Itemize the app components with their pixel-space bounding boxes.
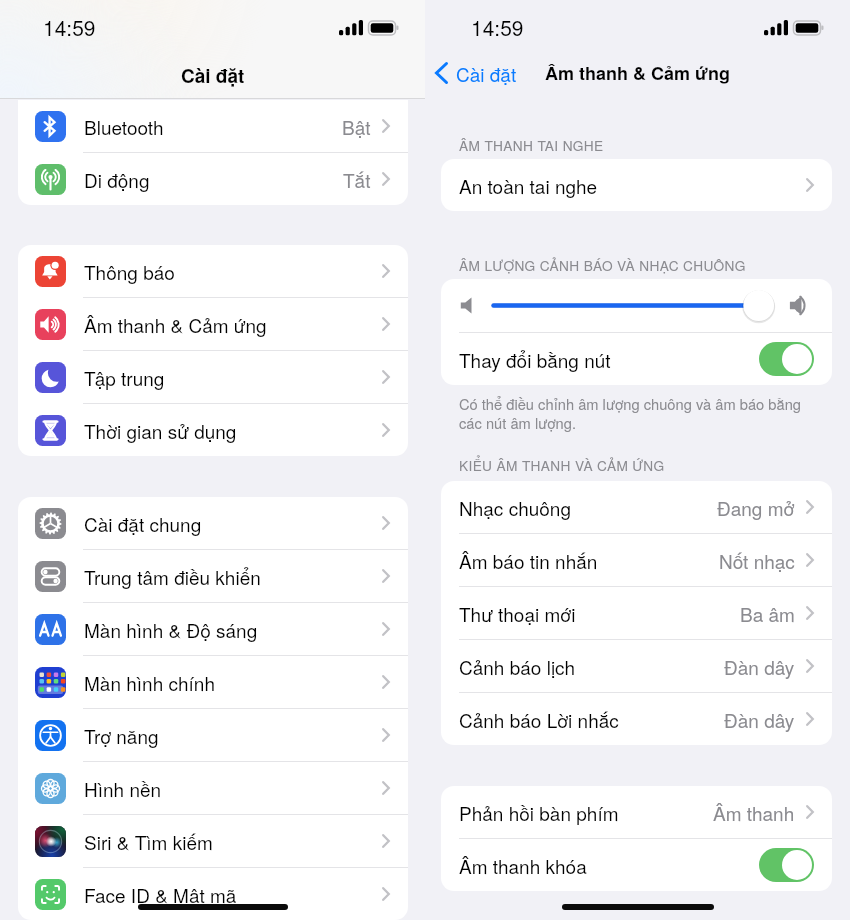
staticText: ÂM LƯỢNG CẢNH BÁO VÀ NHẠC CHUÔNG [459, 255, 746, 275]
button[interactable]: Màn hình chính [18, 656, 408, 708]
staticText: Tập trung [84, 364, 165, 391]
other: Toggle on [759, 848, 814, 882]
staticText: Đàn dây [724, 706, 795, 733]
staticText: Cài đặt [181, 62, 245, 89]
button[interactable]: Tập trung [18, 351, 408, 403]
staticText: Trợ năng [84, 722, 159, 749]
button[interactable]: Thời gian sử dụng [18, 404, 408, 456]
button[interactable]: Trợ năng [18, 709, 408, 761]
staticText: Di động [84, 166, 150, 193]
button[interactable]: Cảnh báo Lời nhắc [441, 693, 832, 745]
staticText: Siri & Tìm kiếm [84, 828, 213, 855]
staticText: Có thể điều chỉnh âm lượng chuông và âm … [459, 393, 801, 433]
button[interactable]: Nhạc chuông [441, 481, 832, 533]
staticText: Bật [342, 113, 371, 140]
button[interactable]: Thay đổi bằng nút [441, 333, 832, 385]
staticText: Cài đặt chung [84, 510, 202, 537]
staticText: KIỂU ÂM THANH VÀ CẢM ỨNG [459, 455, 665, 475]
staticText: Thay đổi bằng nút [459, 346, 611, 373]
staticText: Cài đặt [456, 60, 517, 87]
button[interactable]: Thông báo [18, 245, 408, 297]
staticText: Ba âm [740, 600, 795, 627]
staticText: Trung tâm điều khiển [84, 563, 261, 590]
staticText: Phản hồi bàn phím [459, 799, 619, 826]
staticText: Hình nền [84, 775, 162, 802]
staticText: Thông báo [84, 258, 175, 285]
button[interactable]: Hình nền [18, 762, 408, 814]
staticText: Âm thanh [713, 799, 795, 826]
staticText: Đang mở [717, 494, 795, 521]
staticText: Face ID & Mật mã [84, 881, 237, 908]
button[interactable]: An toàn tai nghe [441, 159, 832, 211]
staticText: Âm thanh & Cảm ứng [545, 60, 730, 86]
button[interactable]: Âm báo tin nhắn [441, 534, 832, 586]
button[interactable]: Thư thoại mới [441, 587, 832, 639]
button[interactable]: Cảnh báo lịch [441, 640, 832, 692]
other: Back [435, 62, 448, 84]
staticText: Nhạc chuông [459, 494, 571, 521]
button[interactable]: Bluetooth [18, 100, 408, 152]
other: Toggle on [759, 342, 814, 376]
button[interactable]: Di động [18, 153, 408, 205]
staticText: 14:59 [43, 12, 96, 42]
button[interactable]: Trung tâm điều khiển [18, 550, 408, 602]
staticText: ÂM THANH TAI NGHE [459, 135, 604, 155]
button[interactable]: Cài đặt chung [18, 497, 408, 549]
button[interactable]: Face ID & Mật mã [18, 868, 408, 920]
staticText: Màn hình chính [84, 669, 215, 696]
staticText: Tắt [343, 166, 371, 193]
staticText: Màn hình & Độ sáng [84, 616, 258, 643]
staticText: Âm báo tin nhắn [459, 547, 598, 574]
staticText: Cảnh báo Lời nhắc [459, 706, 619, 733]
button[interactable]: Siri & Tìm kiếm [18, 815, 408, 867]
staticText: Âm thanh & Cảm ứng [84, 311, 267, 338]
button[interactable]: Âm thanh khóa [441, 839, 832, 891]
staticText: 14:59 [471, 12, 524, 42]
staticText: Nốt nhạc [719, 547, 795, 574]
staticText: Thư thoại mới [459, 600, 576, 627]
button[interactable]: Âm thanh & Cảm ứng [18, 298, 408, 350]
staticText: Cảnh báo lịch [459, 653, 576, 680]
staticText: Bluetooth [84, 113, 164, 140]
staticText: Âm thanh khóa [459, 852, 587, 879]
button[interactable]: Phản hồi bàn phím [441, 786, 832, 838]
staticText: An toàn tai nghe [459, 172, 598, 199]
staticText: Thời gian sử dụng [84, 417, 237, 444]
button[interactable]: Màn hình & Độ sáng [18, 603, 408, 655]
button[interactable]: Back [435, 53, 517, 93]
staticText: Đàn dây [724, 653, 795, 680]
